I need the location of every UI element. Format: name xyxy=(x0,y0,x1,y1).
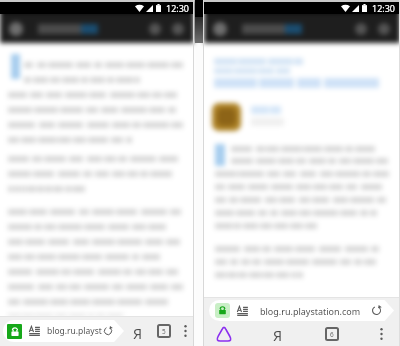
other: Reload xyxy=(103,326,113,336)
button[interactable]: More options xyxy=(183,324,188,338)
staticText: 5 xyxy=(162,327,166,336)
button[interactable]: Yandex search xyxy=(132,324,144,339)
staticText: Я xyxy=(133,324,143,339)
staticText: Я xyxy=(273,326,283,341)
staticText: 12:30 xyxy=(166,2,190,14)
staticText: blog.ru.playst xyxy=(47,325,102,337)
button[interactable]: Tabs xyxy=(325,327,339,341)
button[interactable]: More options xyxy=(379,327,384,341)
button[interactable]: Alice assistant xyxy=(216,326,232,342)
button[interactable]: blog.ru.playstation.com xyxy=(209,300,394,321)
button[interactable]: Yandex search xyxy=(272,326,284,341)
staticText: 12:30 xyxy=(372,2,396,14)
button[interactable]: blog.ru.playst xyxy=(3,320,124,342)
other: More options xyxy=(379,327,384,341)
staticText: 6 xyxy=(330,330,334,339)
other: Alice assistant xyxy=(216,326,232,342)
button[interactable]: Tabs xyxy=(157,324,171,338)
staticText: blog.ru.playstation.com xyxy=(260,305,361,317)
other: More options xyxy=(183,324,188,338)
other: Reload xyxy=(371,305,382,316)
